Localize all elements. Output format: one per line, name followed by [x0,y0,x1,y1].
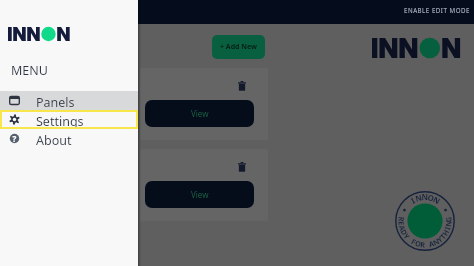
button[interactable]: View [145,181,254,208]
button[interactable]: Settings [0,110,138,129]
button[interactable]: ENABLE EDIT MODE [394,0,474,18]
button[interactable]: Panels [0,91,138,110]
staticText: + Add New [220,42,258,52]
staticText: Settings [36,113,84,130]
button[interactable]: Delete [238,81,246,91]
button[interactable]: + Add New [212,35,265,59]
staticText: About [36,132,72,149]
staticText: MENU [11,62,48,79]
button[interactable]: View [145,100,254,127]
staticText: ENABLE EDIT MODE [404,6,470,14]
button[interactable]: About [0,129,138,148]
staticText: Panels [36,94,75,111]
button[interactable]: Delete [238,162,246,172]
staticText: View [191,108,209,119]
staticText: View [191,189,209,200]
